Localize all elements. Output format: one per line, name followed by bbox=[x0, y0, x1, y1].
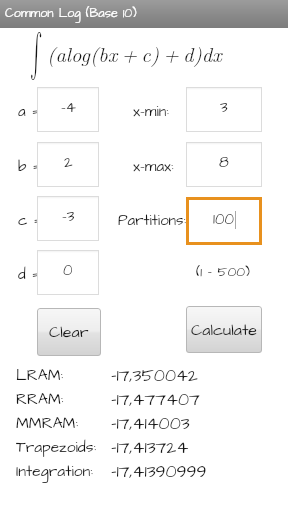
staticText: -4 bbox=[61, 97, 76, 118]
button[interactable]: 3 bbox=[186, 87, 262, 132]
button[interactable]: -4 bbox=[37, 87, 99, 132]
staticText: LRAM: bbox=[16, 365, 64, 387]
staticText: (1 - 500) bbox=[196, 262, 251, 281]
staticText: x-min: bbox=[133, 101, 169, 122]
staticText: 0 bbox=[63, 260, 73, 281]
staticText: b = bbox=[18, 156, 40, 177]
staticText: -17,350042 bbox=[111, 364, 198, 388]
staticText: a = bbox=[18, 101, 40, 122]
staticText: Common Log (Base 10) bbox=[5, 5, 137, 22]
staticText: (alog(bx + c) + d)dx bbox=[47, 39, 222, 68]
staticText: -17,413724 bbox=[111, 436, 189, 460]
staticText: -17,477407 bbox=[111, 388, 200, 412]
button[interactable]: 2 bbox=[37, 142, 99, 187]
button[interactable]: Clear bbox=[37, 308, 101, 356]
staticText: Clear bbox=[49, 321, 89, 343]
staticText: Partitions: bbox=[118, 210, 187, 231]
staticText: -17,414003 bbox=[111, 412, 190, 436]
button[interactable]: -3 bbox=[37, 196, 99, 241]
staticText: x-max: bbox=[133, 156, 174, 177]
staticText: MMRAM: bbox=[16, 413, 79, 435]
staticText: Calculate bbox=[191, 319, 258, 341]
staticText: 3 bbox=[220, 97, 228, 118]
staticText: -3 bbox=[62, 206, 75, 227]
staticText: 100 bbox=[213, 209, 234, 230]
staticText: c = bbox=[18, 210, 41, 231]
button[interactable]: Calculate bbox=[186, 306, 262, 353]
staticText: ∫ bbox=[30, 32, 43, 76]
staticText: 8 bbox=[219, 152, 229, 173]
button[interactable]: 0 bbox=[37, 250, 99, 295]
staticText: Integration: bbox=[16, 461, 93, 483]
staticText: 2 bbox=[64, 152, 73, 173]
staticText: RRAM: bbox=[16, 389, 64, 411]
button[interactable]: 8 bbox=[186, 142, 262, 187]
staticText: Trapezoids: bbox=[16, 437, 97, 459]
button[interactable]: 100 bbox=[186, 197, 262, 245]
staticText: -17,41390999 bbox=[111, 460, 207, 484]
staticText: d = bbox=[18, 264, 40, 285]
